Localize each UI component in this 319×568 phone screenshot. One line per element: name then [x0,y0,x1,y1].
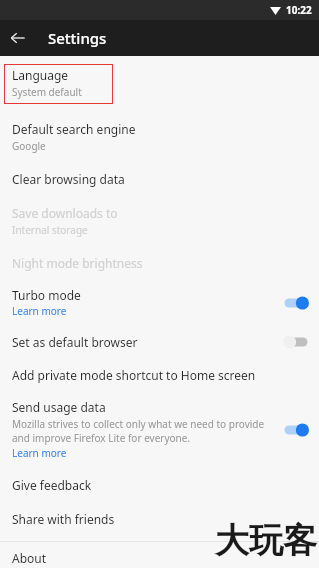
staticText: Save downloads to [12,205,118,221]
button[interactable]: Clear browsing data [0,155,319,189]
staticText: System default [12,85,82,99]
button[interactable]: Give feedback [0,462,319,495]
button[interactable]: Save downloads to [0,189,319,239]
staticText: Learn more [12,446,67,460]
staticText: About [12,550,47,566]
staticText: Add private mode shortcut to Home screen [12,367,256,383]
staticText: Language [12,67,69,83]
staticText: Night mode brightness [12,255,143,271]
staticText: Default search engine [12,121,136,137]
button[interactable]: Default search engine [0,104,319,155]
staticText: 大玩客 [215,519,317,562]
button[interactable]: Language [4,64,113,104]
staticText: 10:22 [286,3,312,17]
button[interactable]: Toggle on [282,421,310,439]
button[interactable]: Back [0,20,36,56]
button[interactable]: About [0,542,319,568]
staticText: Send usage data [12,399,106,415]
button[interactable]: Turbo mode [0,273,319,320]
button[interactable]: Set as default browser [0,320,319,353]
staticText: Mozilla strives to collect only what we … [12,417,274,445]
button[interactable]: Send usage data [0,385,319,462]
staticText: Settings [48,28,107,48]
staticText: Share with friends [12,511,115,527]
button[interactable]: Share with friends [0,495,319,529]
button[interactable]: Night mode brightness [0,239,319,273]
staticText: Give feedback [12,477,92,493]
staticText: Internal storage [12,223,88,237]
button[interactable]: Toggle on [282,294,310,312]
staticText: Learn more [12,304,67,318]
button[interactable]: Add private mode shortcut to Home screen [0,353,319,385]
staticText: Google [12,139,46,153]
staticText: Set as default browser [12,334,138,350]
button[interactable]: Toggle off [282,333,310,351]
staticText: Turbo mode [12,287,81,303]
staticText: Clear browsing data [12,171,125,187]
